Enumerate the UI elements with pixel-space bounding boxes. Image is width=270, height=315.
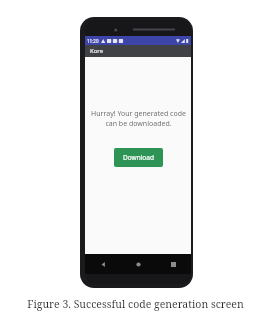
button[interactable]: Back [95,256,111,272]
staticText: Kore [90,47,104,55]
button[interactable]: Home [130,256,146,272]
staticText: Download [123,153,154,162]
staticText: Figure 3. Successful code generation scr… [27,297,244,311]
staticText: Hurray! Your generated code can be downl… [91,109,186,129]
staticText: 11:20 [87,38,99,44]
button[interactable]: Download [114,148,163,167]
button[interactable]: Recent apps [165,256,181,272]
